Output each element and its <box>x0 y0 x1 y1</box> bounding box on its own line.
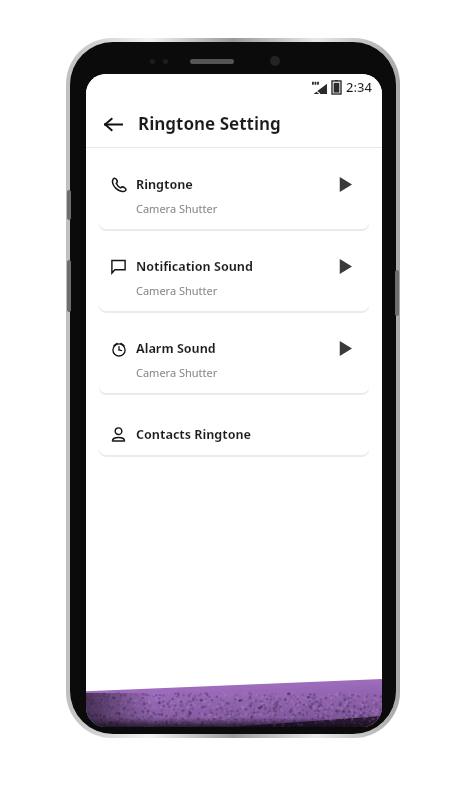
button[interactable]: Play Ringtone <box>332 171 358 197</box>
staticText: Camera Shutter <box>136 365 218 380</box>
button[interactable]: Ringtone <box>99 167 369 229</box>
staticText: Contacts Ringtone <box>136 426 252 443</box>
staticText: Camera Shutter <box>136 201 218 216</box>
staticText: Notification Sound <box>136 258 253 275</box>
staticText: Camera Shutter <box>136 283 218 298</box>
button[interactable]: Notification Sound <box>99 249 369 311</box>
staticText: Ringtone Setting <box>138 112 281 135</box>
button[interactable]: Play Alarm Sound <box>332 335 358 361</box>
button[interactable]: Contacts Ringtone <box>99 413 369 455</box>
button[interactable]: Play Notification Sound <box>332 253 358 279</box>
button[interactable]: Alarm Sound <box>99 331 369 393</box>
staticText: Ringtone <box>136 176 193 193</box>
staticText: Alarm Sound <box>136 340 216 357</box>
button[interactable]: Back <box>98 109 128 139</box>
staticText: 2:34 <box>346 78 372 96</box>
